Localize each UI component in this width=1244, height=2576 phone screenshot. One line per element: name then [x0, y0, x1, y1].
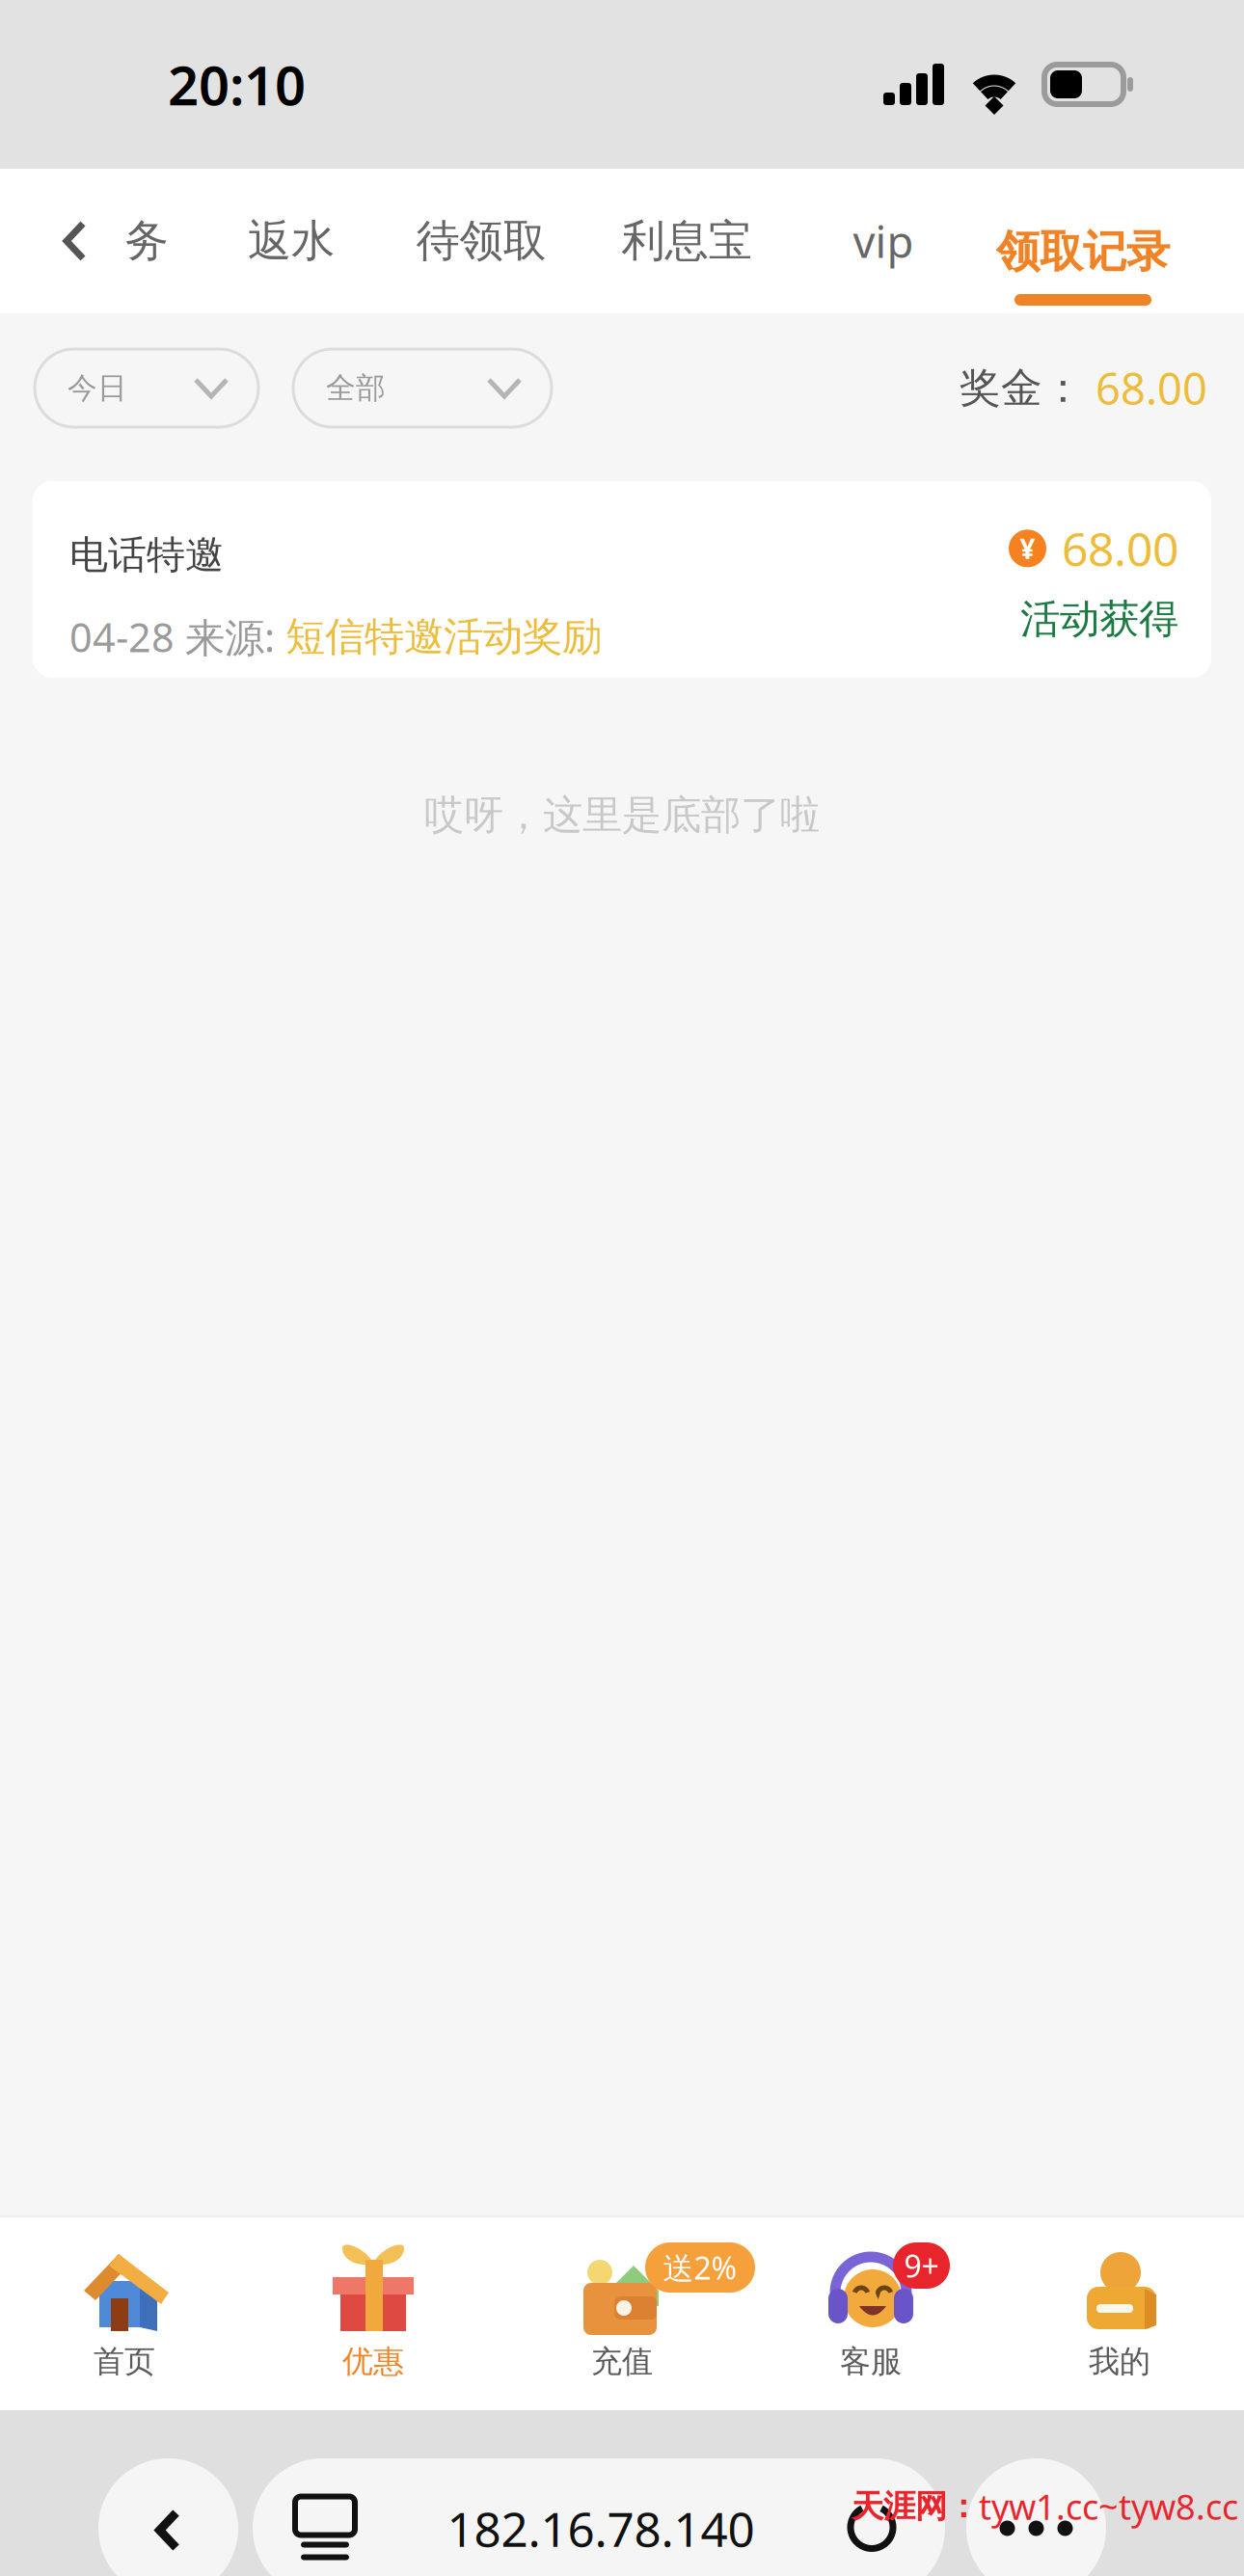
staticText: 电话特邀 — [69, 531, 224, 579]
staticText: 20:10 — [168, 48, 306, 120]
staticText: 首页 — [94, 2343, 155, 2381]
button[interactable]: 充值 — [498, 2217, 746, 2410]
staticText: 我的 — [1089, 2343, 1150, 2381]
button[interactable]: 今日 — [35, 349, 258, 427]
staticText: 送2% — [663, 2247, 737, 2288]
button[interactable]: 务 — [89, 169, 204, 313]
button[interactable]: 全部 — [293, 349, 552, 427]
staticText: 返水 — [248, 214, 335, 268]
staticText: 今日 — [68, 370, 127, 406]
staticText: 68.00 — [1062, 518, 1178, 579]
button[interactable]: Back — [98, 2458, 238, 2576]
button[interactable]: 待领取 — [378, 169, 584, 313]
button[interactable]: 182.16.78.140 — [253, 2458, 945, 2576]
staticText: 68.00 — [1095, 359, 1207, 417]
staticText: 天涯网： — [852, 2487, 979, 2526]
button[interactable]: 利息宝 — [584, 169, 789, 313]
button[interactable]: 我的 — [995, 2217, 1244, 2410]
button[interactable]: 客服 — [746, 2217, 995, 2410]
staticText: 客服 — [840, 2343, 902, 2381]
button[interactable]: 首页 — [0, 2217, 249, 2410]
staticText: 哎呀，这里是底部了啦 — [424, 791, 820, 840]
staticText: 充值 — [591, 2343, 653, 2381]
staticText: 9+ — [904, 2245, 939, 2286]
staticText: 短信特邀活动奖励 — [285, 612, 602, 661]
button[interactable]: 返水 — [204, 169, 378, 313]
staticText: 活动获得 — [1020, 595, 1178, 644]
staticText: 领取记录 — [996, 225, 1170, 279]
staticText: 182.16.78.140 — [447, 2497, 755, 2560]
staticText: 04-28 来源: — [69, 610, 285, 663]
button[interactable]: More — [966, 2458, 1106, 2576]
staticText: 全部 — [326, 370, 386, 406]
button[interactable]: 优惠 — [249, 2217, 498, 2410]
staticText: 利息宝 — [622, 214, 752, 268]
staticText: ¥ — [1020, 531, 1035, 566]
staticText: tyw1.cc~tyw8.cc — [979, 2483, 1238, 2530]
staticText: 奖金： — [960, 363, 1084, 413]
button[interactable]: vip — [789, 169, 978, 313]
button[interactable]: 电话特邀 — [33, 481, 1211, 678]
staticText: 务 — [125, 214, 168, 268]
button[interactable]: 领取记录 — [978, 169, 1188, 313]
staticText: 优惠 — [342, 2343, 404, 2381]
button[interactable]: Back — [0, 169, 89, 313]
staticText: 待领取 — [416, 214, 546, 268]
staticText: vip — [853, 212, 914, 270]
